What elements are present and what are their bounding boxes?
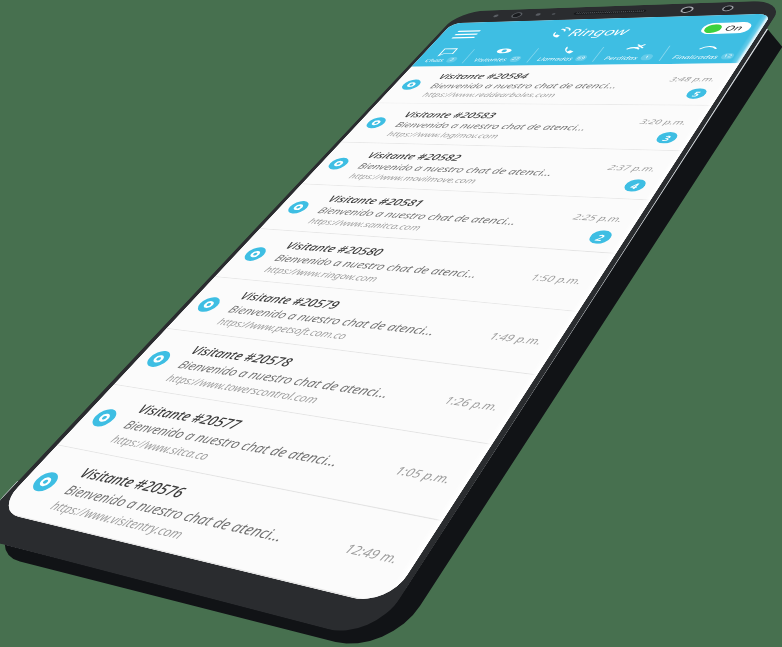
button[interactable]: Llamadas — [525, 44, 606, 65]
staticText: 1:49 p.m. — [487, 330, 546, 347]
staticText: https://www.reddearboles.com — [420, 90, 559, 99]
staticText: Visitante #20581 — [325, 193, 428, 209]
button[interactable]: Visitante #20582 — [301, 142, 682, 200]
staticText: Chats — [423, 57, 447, 63]
staticText: https://www.petsoft.com.co — [214, 315, 351, 342]
button[interactable]: Visitante #20583 — [340, 103, 712, 151]
staticText: 3:48 p.m. — [668, 75, 718, 83]
staticText: Bienvenido a nuestro chat de atenci... — [427, 81, 622, 90]
staticText: 4 — [628, 180, 643, 191]
button[interactable]: Finalizadas — [657, 41, 754, 64]
staticText: 2 — [593, 232, 608, 243]
staticText: Bienvenido a nuestro chat de atenci... — [224, 303, 441, 339]
staticText: Visitante #20584 — [436, 71, 532, 81]
staticText: https://www.movilmove.com — [346, 171, 480, 185]
staticText: 2 — [448, 57, 456, 62]
button[interactable]: Visitante #20579 — [166, 277, 578, 375]
staticText: 1 — [643, 55, 652, 60]
staticText: https://www.sanitca.com — [306, 215, 425, 233]
staticText: Llamadas — [535, 55, 575, 62]
button[interactable]: Visitantes — [460, 45, 541, 66]
button[interactable]: Visitante #20578 — [114, 329, 537, 445]
staticText: https://www.towerscontrol.com — [163, 371, 323, 406]
staticText: Perdidas — [603, 54, 640, 61]
staticText: https://www.visitentry.com — [47, 497, 189, 542]
button[interactable]: Visitante #20580 — [214, 229, 616, 312]
staticText: Bienvenido a nuestro chat de atenci... — [392, 120, 591, 133]
button[interactable]: Visitante #20581 — [259, 184, 650, 254]
staticText: 3:20 p.m. — [638, 117, 690, 126]
staticText: 1:05 p.m. — [392, 463, 456, 487]
staticText: Visitante #20579 — [236, 289, 344, 312]
button[interactable]: Menu — [444, 26, 488, 43]
button[interactable]: Perdidas — [590, 43, 672, 65]
staticText: 2:25 p.m. — [571, 211, 626, 224]
staticText: Ringow — [564, 24, 634, 39]
staticText: 12 — [722, 53, 735, 59]
staticText: Visitantes — [472, 56, 510, 63]
staticText: Visitante #20583 — [401, 109, 500, 121]
staticText: 69 — [575, 55, 588, 61]
staticText: https://www.ringow.com — [262, 263, 382, 284]
staticText: Bienvenido a nuestro chat de atenci... — [174, 357, 395, 402]
button[interactable]: On — [698, 22, 754, 34]
staticText: 3 — [660, 133, 674, 143]
staticText: Bienvenido a nuestro chat de atenci... — [355, 161, 557, 178]
staticText: https://www.logimov.com — [385, 129, 502, 140]
staticText: Bienvenido a nuestro chat de atenci... — [314, 205, 522, 228]
staticText: Visitante #20582 — [364, 150, 465, 163]
staticText: 12:49 m. — [341, 540, 404, 567]
button[interactable]: Visitante #20576 — [0, 445, 442, 606]
staticText: 1:50 p.m. — [528, 271, 586, 287]
staticText: 5 — [690, 89, 703, 98]
staticText: On — [722, 23, 746, 33]
staticText: Bienvenido a nuestro chat de atenci... — [119, 417, 345, 471]
staticText: Bienvenido a nuestro chat de atenci... — [271, 252, 483, 281]
staticText: 2:37 p.m. — [605, 163, 659, 173]
button[interactable]: Visitante #20577 — [57, 385, 492, 521]
staticText: Visitante #20576 — [75, 464, 191, 502]
staticText: Finalizadas — [671, 53, 721, 60]
staticText: 1:26 p.m. — [441, 393, 503, 414]
button[interactable]: Chats — [411, 46, 477, 67]
button[interactable]: Visitante #20584 — [377, 63, 739, 106]
staticText: Visitante #20580 — [282, 239, 388, 259]
staticText: Bienvenido a nuestro chat de atenci... — [60, 481, 290, 546]
staticText: https://www.sitca.co — [107, 431, 215, 463]
staticText: 27 — [510, 56, 522, 62]
staticText: Visitante #20577 — [133, 401, 246, 433]
staticText: Visitante #20578 — [187, 342, 297, 370]
